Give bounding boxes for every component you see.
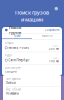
button[interactable]: Дата загрузки — [2, 64, 62, 74]
button[interactable]: Откуда — [2, 40, 62, 52]
staticText: Поиск грузов — [15, 9, 49, 16]
button[interactable]: Вес, объём — [3, 86, 61, 96]
staticText: Любой — [6, 81, 16, 85]
staticText: Не указаны — [6, 92, 19, 95]
staticText: Дата загрузки — [5, 66, 21, 69]
button[interactable]: Account — [55, 4, 64, 10]
staticText: Москва, Россия — [8, 46, 29, 49]
staticText: и машин — [21, 16, 43, 23]
button[interactable]: Машины — [32, 34, 62, 39]
staticText: Сегодня — [5, 70, 17, 73]
staticText: Радиус — [53, 57, 59, 59]
staticText: 100 км — [49, 59, 59, 63]
button[interactable]: Тип кузова — [3, 76, 61, 86]
staticText: Сохранить — [45, 28, 59, 32]
staticText: Машины — [41, 34, 52, 37]
staticText: Откуда — [5, 41, 13, 44]
staticText: Тип кузова — [6, 77, 20, 81]
staticText: Поиск грузов — [9, 25, 21, 35]
button[interactable]: Грузы — [2, 34, 32, 39]
staticText: Вес, объём — [6, 88, 21, 91]
staticText: Радиус — [53, 45, 59, 47]
button[interactable]: Куда — [2, 52, 62, 64]
staticText: 200 км — [49, 47, 59, 50]
staticText: Грузы — [13, 34, 20, 37]
staticText: Санкт-Петербург — [8, 58, 29, 62]
staticText: Куда — [5, 53, 11, 57]
